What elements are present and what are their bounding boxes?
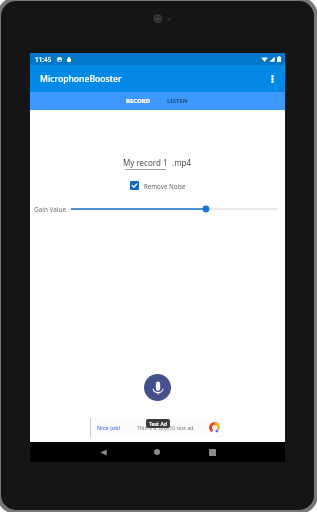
staticText: MicrophoneBooster — [40, 73, 122, 85]
button[interactable]: Record — [144, 374, 171, 401]
staticText: Remove Noise — [144, 182, 186, 190]
button[interactable]: RECORD — [119, 92, 158, 110]
button[interactable] — [71, 204, 277, 214]
staticText: LISTEN — [167, 97, 188, 105]
button[interactable]: Home — [147, 442, 167, 462]
staticText: RECORD — [126, 97, 151, 105]
staticText: Nice job! — [97, 424, 121, 432]
button[interactable]: Recents — [202, 442, 222, 462]
button[interactable]: More options — [260, 67, 284, 91]
staticText: Gain Value — [34, 205, 66, 214]
staticText: This is a 320x50 test ad. — [137, 424, 195, 431]
button[interactable]: Remove Noise — [130, 181, 186, 190]
button[interactable]: LISTEN — [158, 92, 197, 110]
button[interactable]: Nice job! — [90, 418, 225, 437]
staticText: .mp4 — [172, 157, 192, 168]
staticText: 11:45 — [35, 55, 52, 64]
button[interactable]: Back — [93, 442, 113, 462]
staticText: Test Ad — [149, 420, 167, 427]
staticText: My record 1 — [123, 157, 168, 168]
